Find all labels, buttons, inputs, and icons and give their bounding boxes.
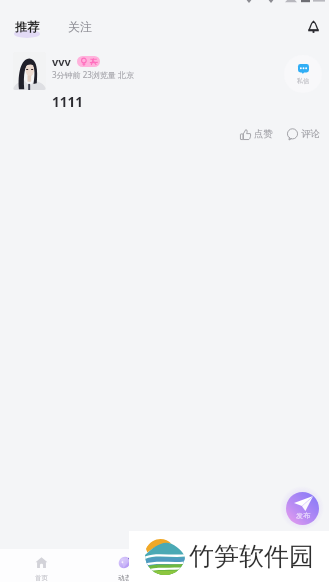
staticText: 1111: [52, 93, 83, 111]
button[interactable]: 关注: [68, 19, 92, 34]
staticText: 评论: [301, 128, 320, 140]
staticText: 竹笋软件园: [189, 541, 314, 572]
staticText: 动态: [118, 574, 131, 582]
staticText: 推荐: [15, 19, 39, 34]
button[interactable]: 动态: [83, 549, 165, 582]
button[interactable]: 评论: [287, 126, 320, 142]
button[interactable]: 消息: [165, 549, 247, 582]
staticText: 发布: [296, 511, 310, 520]
staticText: vvv: [52, 54, 71, 69]
staticText: 私信: [297, 77, 309, 85]
staticText: 点赞: [254, 128, 273, 140]
staticText: 3分钟前 23浏览量 北京: [52, 69, 134, 80]
button[interactable]: 发布: [286, 492, 319, 525]
button[interactable]: 推荐: [14, 17, 40, 35]
button[interactable]: 首页: [0, 549, 83, 582]
button[interactable]: Notifications: [303, 16, 323, 36]
staticText: 首页: [35, 574, 48, 582]
button[interactable]: 点赞: [240, 126, 273, 142]
staticText: 关注: [68, 19, 92, 34]
button[interactable]: 私信: [284, 55, 322, 93]
button[interactable]: 我的: [247, 549, 329, 582]
button[interactable]: [13, 52, 46, 90]
